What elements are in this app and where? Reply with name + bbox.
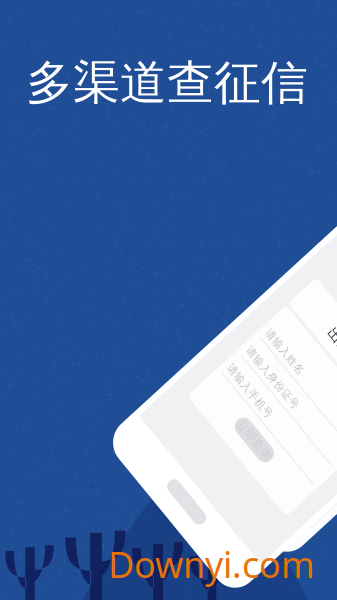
staticText: 多渠道查征信 [26, 54, 308, 112]
staticText: Downyi.com [108, 540, 315, 588]
